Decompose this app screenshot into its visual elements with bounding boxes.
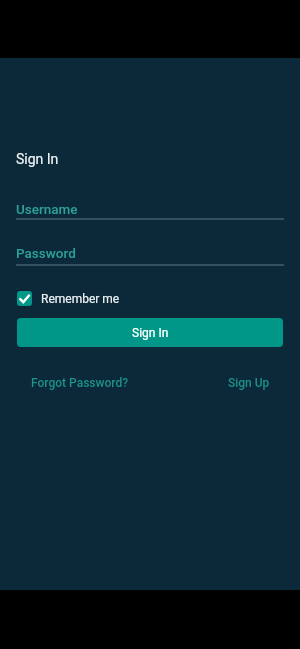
button[interactable]: Remember me [17,291,120,306]
button[interactable]: Sign Up [228,376,270,390]
staticText: Password [16,245,76,261]
staticText: Sign In [132,326,169,340]
staticText: Remember me [41,292,120,306]
staticText: Sign In [16,151,59,167]
staticText: Username [16,201,78,217]
button[interactable]: Sign In [17,318,283,347]
button[interactable]: Forgot Password? [31,376,129,390]
